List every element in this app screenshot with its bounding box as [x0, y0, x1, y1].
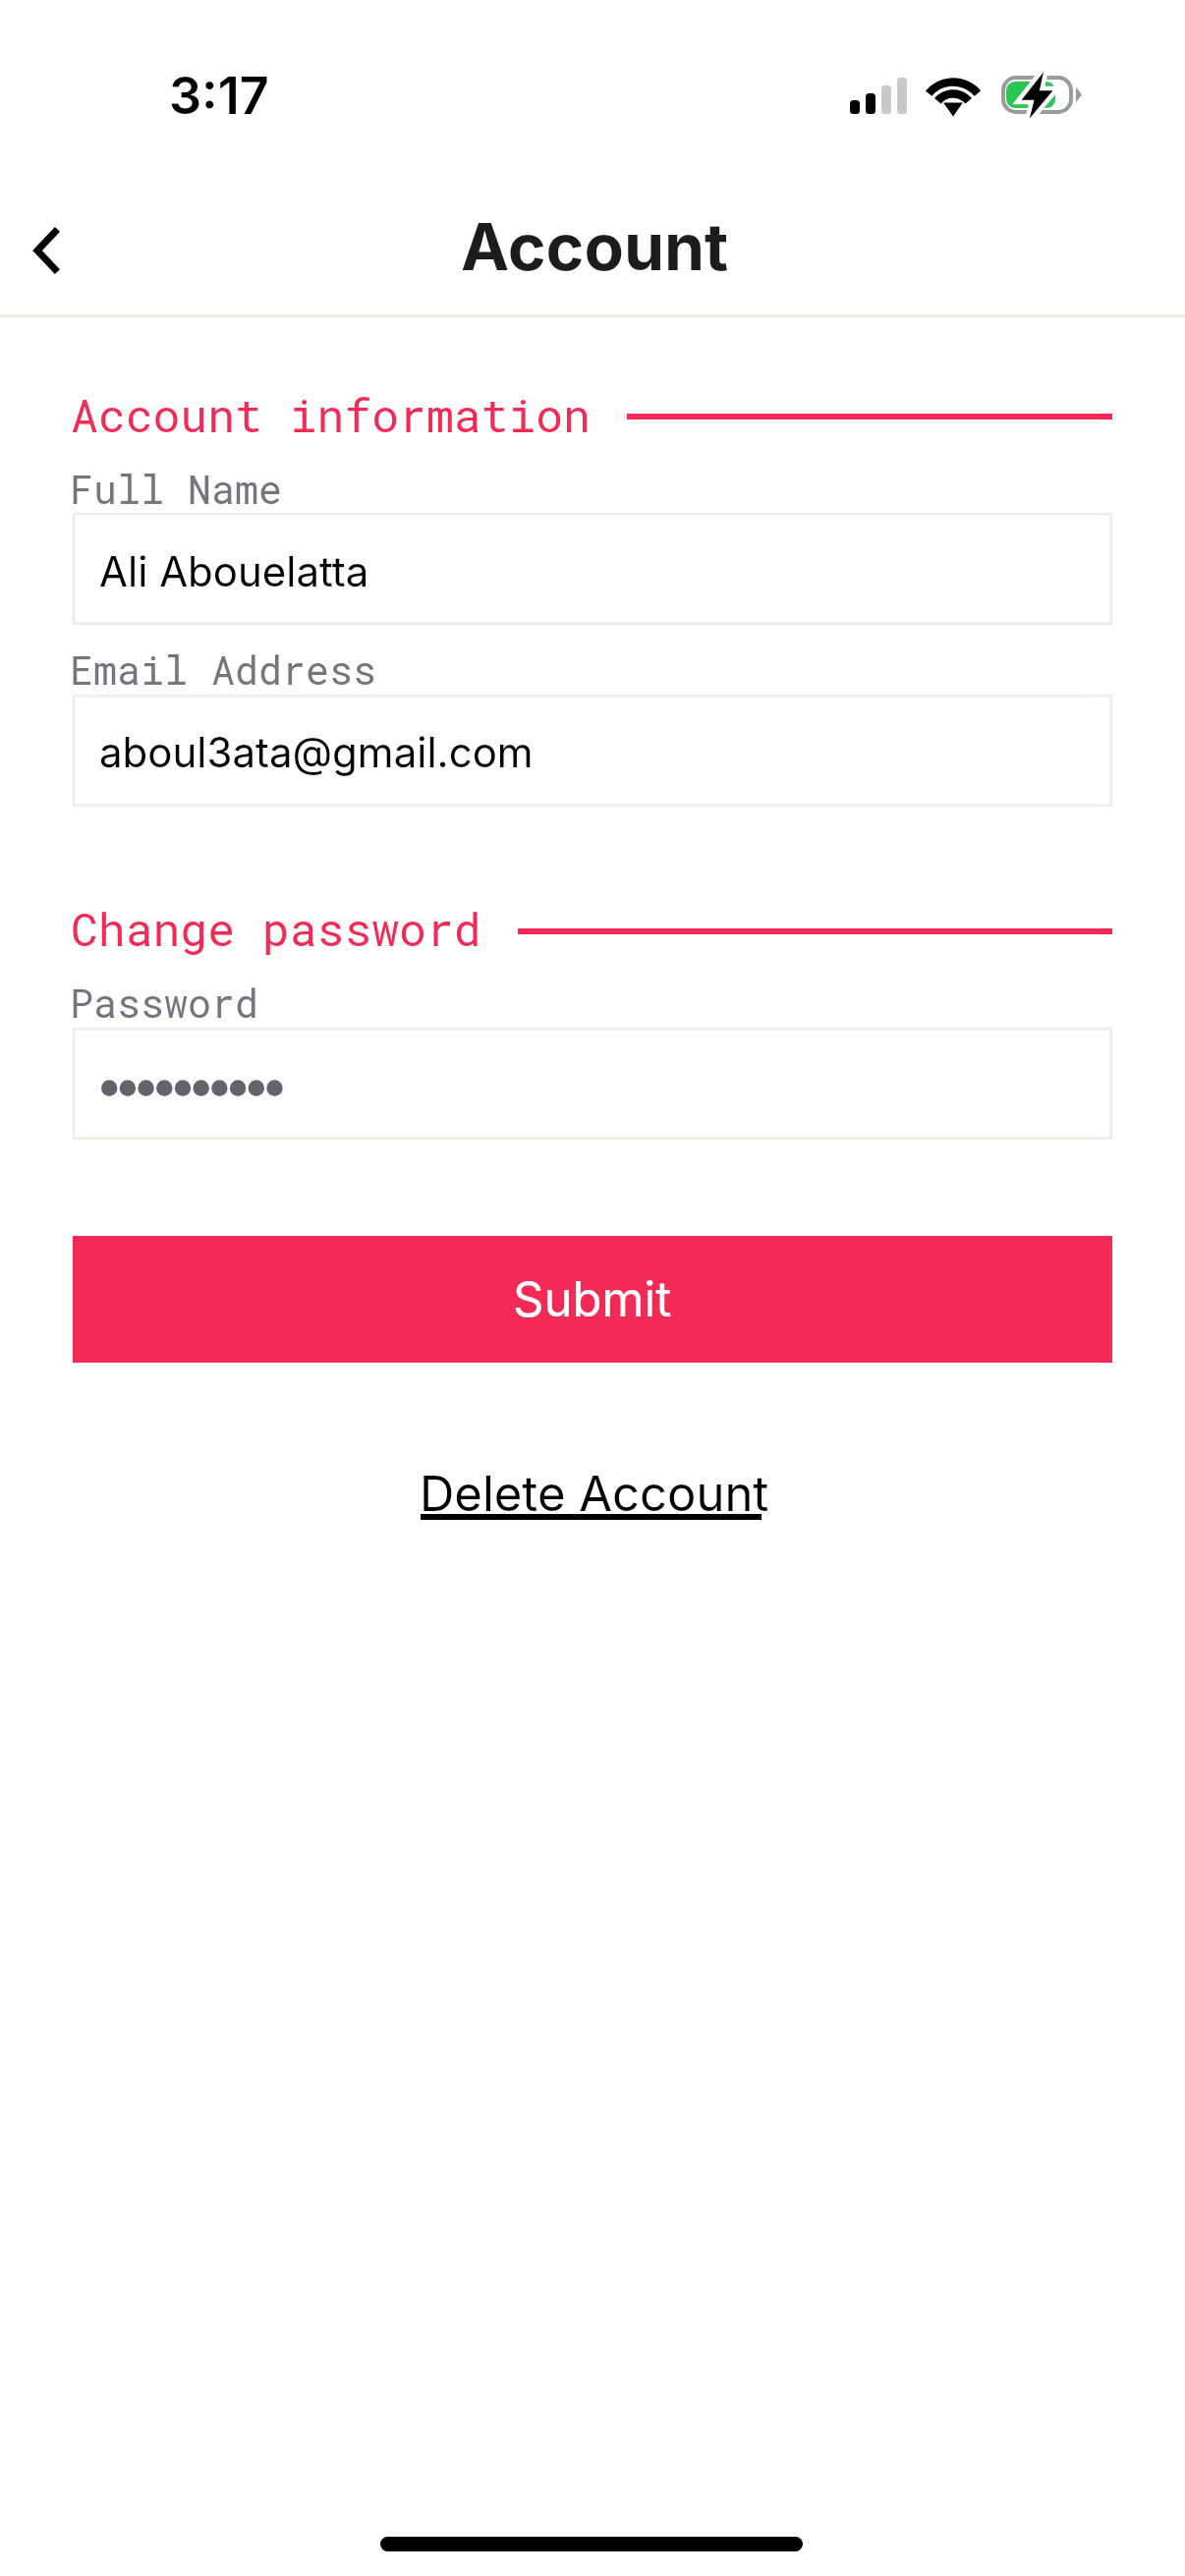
staticText: Account information: [71, 384, 591, 444]
staticText: Password: [70, 977, 259, 1029]
button[interactable]: Password, 10 characters hidden: [73, 1028, 1112, 1140]
staticText: Email Address: [70, 644, 377, 696]
button[interactable]: Back: [0, 189, 92, 312]
staticText: Delete Account: [420, 1465, 769, 1523]
staticText: Submit: [513, 1270, 672, 1328]
staticText: Account: [461, 207, 729, 286]
button[interactable]: Delete Account: [407, 1452, 778, 1533]
staticText: Full Name: [70, 463, 283, 515]
staticText: Change password: [71, 898, 481, 958]
staticText: aboul3ata@gmail.com: [99, 727, 534, 777]
button[interactable]: aboul3ata@gmail.com: [73, 695, 1112, 807]
button[interactable]: Ali Abouelatta: [73, 513, 1112, 625]
other: Password, 10 characters hidden: [101, 1080, 286, 1096]
button[interactable]: Submit: [73, 1236, 1112, 1363]
staticText: Ali Abouelatta: [99, 546, 369, 596]
staticText: 3:17: [169, 65, 269, 127]
